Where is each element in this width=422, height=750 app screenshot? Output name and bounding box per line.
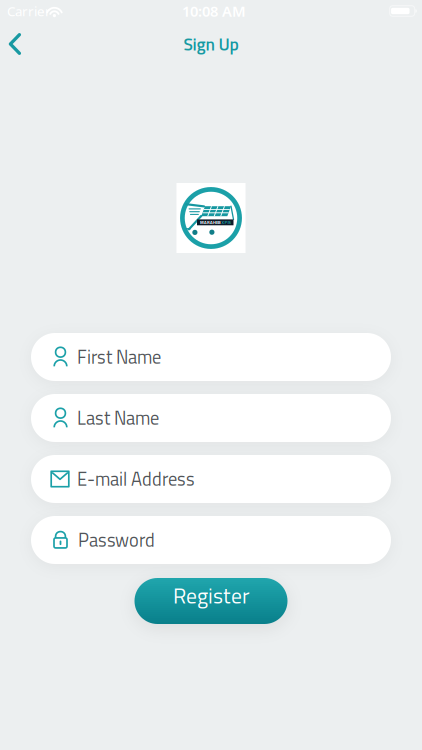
button[interactable]: Register [134,578,287,624]
staticText: 10:08 AM [182,1,246,21]
staticText: Last Name [77,404,159,432]
staticText: Register [173,579,249,612]
staticText: Sign Up [183,31,238,57]
button[interactable]: First Name [31,333,391,381]
staticText: E-mail Address [77,465,195,493]
staticText: Carrier [7,2,51,20]
button[interactable]: Back [0,24,30,64]
staticText: XPIS [221,219,230,226]
button[interactable]: Password [31,516,391,564]
staticText: Password [78,526,155,554]
button[interactable]: Last Name [31,394,391,442]
button[interactable]: E-mail Address [31,455,391,503]
staticText: First Name [77,343,161,371]
staticText: MARAHEB [200,219,221,226]
